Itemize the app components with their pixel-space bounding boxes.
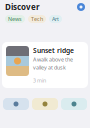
staticText: 3 min	[33, 77, 46, 84]
staticText: Art	[52, 15, 59, 23]
button[interactable]: Category	[3, 98, 29, 110]
button[interactable]: Category	[61, 98, 87, 110]
button[interactable]: News	[5, 15, 25, 23]
staticText: valley at dusk	[33, 64, 66, 71]
staticText: News	[8, 15, 22, 23]
button[interactable]: Tech	[28, 15, 46, 23]
button[interactable]: Art	[49, 15, 62, 23]
staticText: A walk above the	[33, 56, 73, 63]
staticText: Sunset ridge	[33, 46, 74, 55]
button[interactable]: Profile	[77, 3, 85, 11]
button[interactable]: Category	[32, 98, 58, 110]
staticText: Discover	[5, 2, 40, 12]
staticText: Tech	[31, 15, 43, 23]
